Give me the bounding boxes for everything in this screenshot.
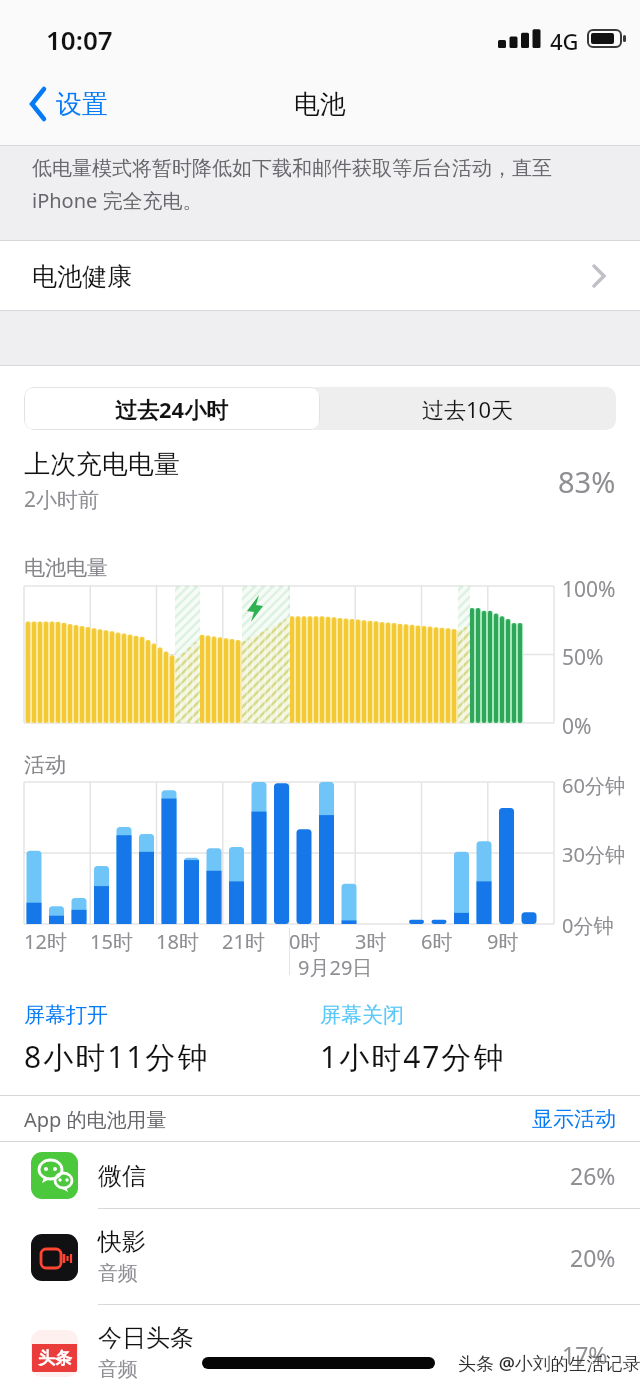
staticText: 20%: [570, 1242, 616, 1273]
staticText: 屏幕关闭: [320, 1002, 404, 1028]
staticText: 过去10天: [422, 394, 514, 424]
staticText: 60分钟: [562, 772, 625, 799]
staticText: 头条 @小刘的生活记录: [458, 1351, 640, 1376]
staticText: 9月29日: [298, 954, 373, 981]
staticText: 12时: [24, 928, 67, 955]
staticText: 8小时11分钟: [24, 1036, 210, 1077]
button[interactable]: 设置: [28, 62, 108, 146]
staticText: 电池: [294, 88, 346, 121]
button[interactable]: 电池健康: [0, 241, 640, 311]
staticText: 上次充电电量: [24, 448, 180, 481]
staticText: 100%: [562, 575, 616, 604]
staticText: 2小时前: [24, 485, 100, 514]
staticText: 10:07: [46, 22, 113, 57]
button[interactable]: 头条: [0, 1305, 640, 1385]
staticText: 音频: [98, 1261, 138, 1286]
staticText: 18时: [156, 928, 199, 955]
button[interactable]: 显示活动: [532, 1106, 616, 1132]
staticText: 快影: [98, 1227, 146, 1257]
staticText: 3时: [355, 928, 387, 955]
staticText: 活动: [24, 752, 66, 778]
staticText: App 的电池用量: [24, 1106, 167, 1133]
staticText: 30分钟: [562, 841, 625, 868]
staticText: 0分钟: [562, 912, 614, 939]
button[interactable]: 微信: [0, 1142, 640, 1209]
staticText: 15时: [90, 928, 133, 955]
button[interactable]: 过去24小时: [24, 387, 320, 430]
staticText: 26%: [570, 1160, 616, 1191]
staticText: 电池电量: [24, 555, 108, 582]
staticText: 50%: [562, 643, 604, 672]
staticText: 6时: [421, 928, 453, 955]
staticText: 4G: [550, 26, 579, 56]
staticText: 1小时47分钟: [320, 1036, 506, 1077]
staticText: 屏幕打开: [24, 1002, 108, 1028]
staticText: 过去24小时: [115, 394, 229, 424]
staticText: 0时: [289, 928, 321, 955]
button[interactable]: 过去10天: [320, 387, 616, 430]
staticText: 电池健康: [32, 261, 132, 292]
button[interactable]: 快影: [0, 1209, 640, 1305]
staticText: 9时: [487, 928, 519, 955]
staticText: 音频: [98, 1357, 138, 1382]
staticText: 今日头条: [98, 1323, 194, 1353]
staticText: 头条: [38, 1348, 72, 1369]
staticText: 21时: [222, 928, 265, 955]
staticText: 0%: [562, 712, 592, 741]
staticText: 17%: [562, 1339, 608, 1370]
staticText: 83%: [558, 462, 616, 501]
staticText: 微信: [98, 1161, 146, 1191]
staticText: 低电量模式将暂时降低如下载和邮件获取等后台活动，直至 iPhone 完全充电。: [32, 156, 552, 214]
staticText: 设置: [56, 88, 108, 121]
